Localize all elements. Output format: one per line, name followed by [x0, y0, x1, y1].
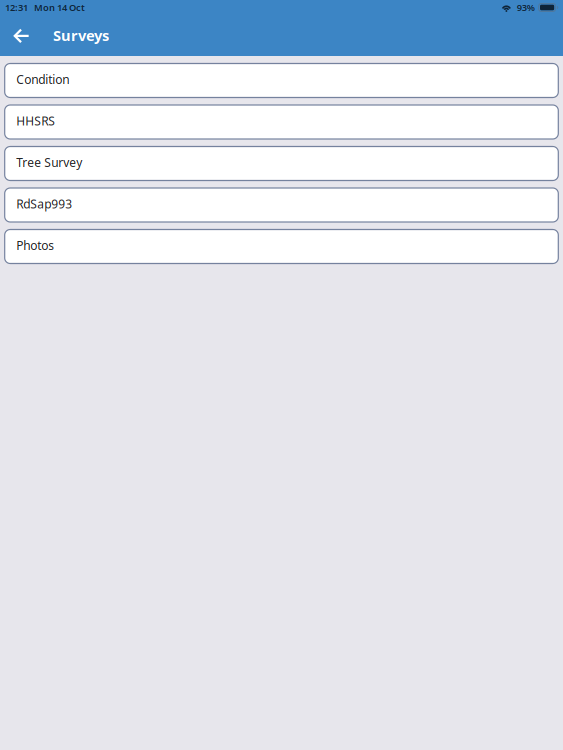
- staticText: Mon 14 Oct: [34, 1, 85, 14]
- button[interactable]: Condition: [5, 63, 558, 97]
- button[interactable]: Back: [4, 15, 36, 56]
- staticText: Surveys: [53, 25, 109, 45]
- button[interactable]: HHSRS: [5, 105, 558, 139]
- staticText: Photos: [16, 237, 54, 253]
- button[interactable]: Tree Survey: [5, 146, 558, 180]
- button[interactable]: Photos: [5, 229, 558, 263]
- staticText: 93%: [517, 1, 535, 14]
- staticText: Tree Survey: [16, 154, 82, 170]
- staticText: HHSRS: [16, 113, 55, 129]
- button[interactable]: RdSap993: [5, 188, 558, 222]
- staticText: 12:31: [5, 1, 28, 14]
- staticText: Condition: [16, 71, 69, 87]
- staticText: RdSap993: [16, 196, 72, 212]
